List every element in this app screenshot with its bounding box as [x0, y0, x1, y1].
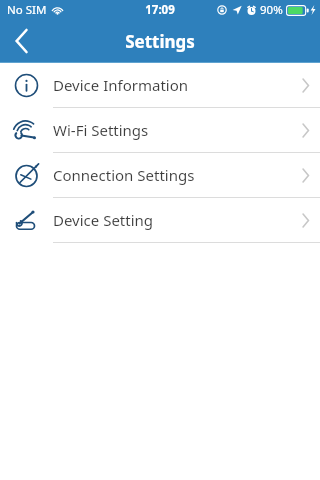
- button[interactable]: Device Setting: [0, 198, 320, 242]
- button[interactable]: Device Information: [0, 63, 320, 107]
- button[interactable]: Wi-Fi Settings: [0, 108, 320, 152]
- staticText: Connection Settings: [53, 165, 290, 185]
- staticText: Settings: [125, 30, 195, 53]
- staticText: Device Information: [53, 75, 290, 95]
- button[interactable]: Connection Settings: [0, 153, 320, 197]
- staticText: 90%: [260, 2, 283, 18]
- staticText: 17:09: [145, 2, 175, 18]
- staticText: Wi-Fi Settings: [53, 120, 290, 140]
- button[interactable]: Back: [0, 20, 44, 62]
- staticText: Device Setting: [53, 210, 290, 230]
- staticText: No SIM: [7, 2, 47, 18]
